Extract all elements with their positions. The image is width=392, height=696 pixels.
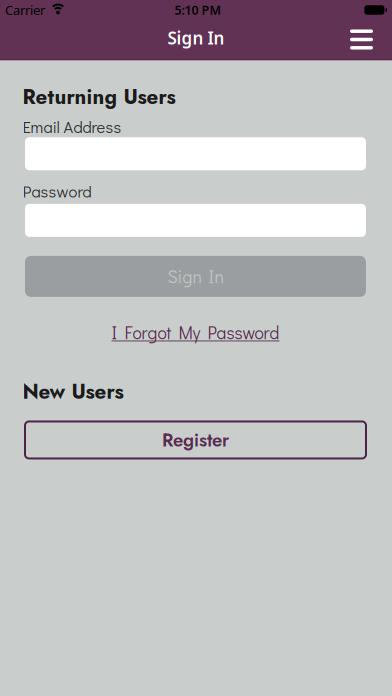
staticText: New Users bbox=[22, 377, 123, 406]
staticText: Password bbox=[22, 180, 91, 202]
staticText: Carrier bbox=[5, 1, 45, 19]
staticText: Register bbox=[162, 427, 229, 453]
button[interactable]: Register bbox=[25, 421, 366, 458]
button[interactable]: Email Address bbox=[25, 137, 366, 170]
button[interactable]: Sign In bbox=[25, 256, 366, 297]
button[interactable]: Menu bbox=[338, 19, 392, 59]
staticText: Sign In bbox=[167, 265, 223, 288]
staticText: Email Address bbox=[22, 116, 121, 137]
staticText: Sign In bbox=[167, 26, 224, 50]
button[interactable]: I Forgot My Password bbox=[111, 321, 279, 344]
staticText: I Forgot My Password bbox=[111, 321, 279, 344]
staticText: 5:10 PM bbox=[174, 1, 221, 18]
staticText: Returning Users bbox=[22, 82, 175, 112]
